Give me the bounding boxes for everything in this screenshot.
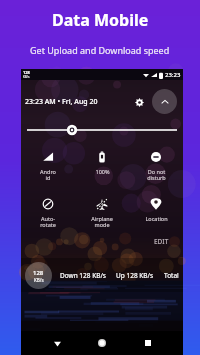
staticText: EDIT (154, 237, 169, 246)
staticText: 23:23 (165, 71, 181, 79)
button[interactable]: Location (129, 195, 183, 223)
staticText: 23:23 AM • Fri, Aug 20 (25, 97, 98, 107)
staticText: Data Mobile (52, 9, 149, 31)
button[interactable]: 128 (21, 258, 183, 292)
staticText: Get Upload and Download speed (30, 44, 170, 56)
button[interactable]: 100% (75, 148, 129, 176)
button[interactable]: Back (47, 333, 67, 353)
button[interactable]: Collapse (152, 89, 177, 114)
staticText: Location (145, 215, 168, 222)
button[interactable]: Airplane mode (75, 195, 129, 230)
button[interactable]: Auto- rotate (21, 195, 75, 230)
button[interactable]: Recents (138, 333, 158, 353)
staticText: 100% (95, 168, 110, 175)
staticText: Airplane mode (91, 215, 113, 229)
button[interactable]: Settings (130, 93, 148, 111)
staticText: Do not disturb (147, 168, 166, 182)
button[interactable]: Home (92, 333, 112, 353)
button[interactable]: Do not disturb (129, 148, 183, 183)
staticText: 128 (33, 269, 44, 277)
button[interactable]: Brightness (27, 124, 177, 136)
button[interactable]: Andro id (21, 148, 75, 183)
staticText: KB/s (23, 75, 30, 79)
staticText: Down 128 KB/s (60, 271, 106, 280)
staticText: Andro id (40, 168, 56, 182)
staticText: Auto- rotate (40, 215, 56, 229)
staticText: Up 128 KB/s (116, 271, 154, 280)
button[interactable]: EDIT (152, 235, 171, 248)
staticText: KB/s (34, 277, 44, 283)
staticText: 128 (23, 70, 30, 75)
staticText: Total (164, 271, 179, 280)
